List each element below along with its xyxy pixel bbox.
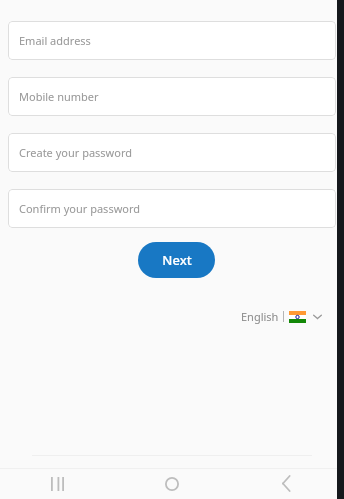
staticText: English	[241, 309, 279, 324]
button[interactable]: Recents	[0, 468, 114, 499]
button[interactable]: English	[238, 306, 326, 327]
button[interactable]: Next	[138, 242, 215, 278]
other: Change language	[312, 311, 323, 322]
button[interactable]: Home	[114, 468, 229, 499]
button[interactable]: Create your password	[8, 133, 336, 172]
button[interactable]: Back	[229, 468, 344, 499]
staticText: Email address	[19, 33, 91, 48]
staticText: Mobile number	[19, 89, 99, 104]
button[interactable]: Confirm your password	[8, 189, 336, 228]
button[interactable]: Mobile number	[8, 77, 336, 116]
staticText: Create your password	[19, 145, 133, 160]
staticText: Next	[162, 251, 192, 269]
staticText: Confirm your password	[19, 201, 141, 216]
button[interactable]: Email address	[8, 21, 336, 60]
